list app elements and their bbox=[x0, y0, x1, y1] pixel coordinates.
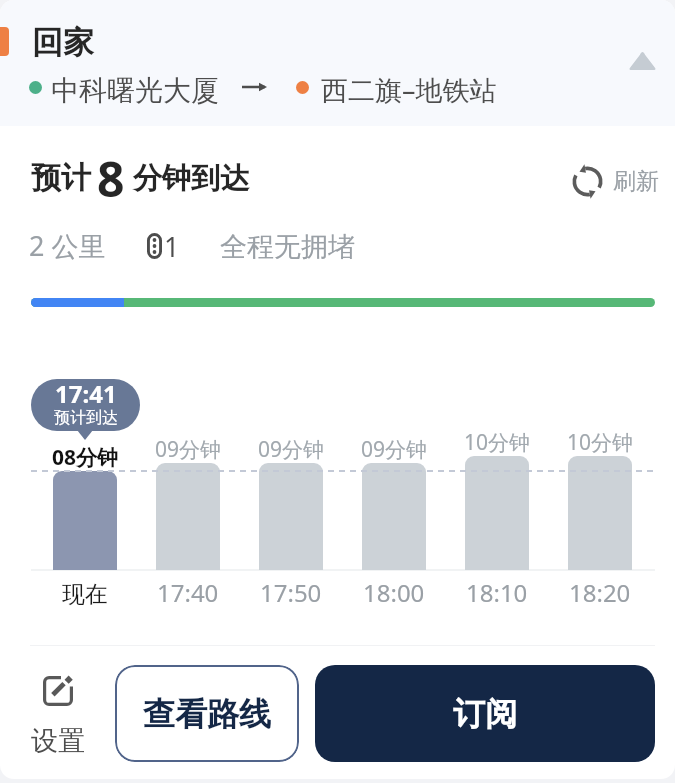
staticText: 设置 bbox=[31, 724, 85, 758]
button[interactable]: Collapse bbox=[614, 32, 671, 89]
staticText: 预计到达 bbox=[54, 408, 118, 428]
button[interactable]: 刷新 bbox=[566, 160, 665, 203]
staticText: 查看路线 bbox=[143, 694, 271, 734]
staticText: 回家 bbox=[32, 23, 94, 62]
button[interactable]: 回家 bbox=[0, 0, 675, 126]
staticText: 现在 bbox=[62, 580, 108, 609]
staticText: 17:41 bbox=[55, 379, 117, 410]
button[interactable]: 订阅 bbox=[315, 665, 655, 762]
staticText: 08分钟 bbox=[52, 443, 119, 472]
staticText: 西二旗–地铁站 bbox=[321, 71, 497, 108]
staticText: 09分钟 bbox=[155, 435, 222, 464]
button[interactable]: 查看路线 bbox=[115, 665, 299, 762]
staticText: 18:00 bbox=[363, 576, 425, 609]
staticText: 中科曙光大厦 bbox=[51, 73, 219, 108]
staticText: 10分钟 bbox=[567, 428, 634, 457]
staticText: 预计 bbox=[31, 159, 91, 197]
staticText: 分钟到达 bbox=[133, 160, 249, 197]
staticText: 17:50 bbox=[260, 576, 322, 609]
staticText: 17:40 bbox=[157, 576, 219, 609]
staticText: 18:20 bbox=[569, 576, 631, 609]
staticText: 18:10 bbox=[466, 576, 528, 609]
staticText: 2 公里 bbox=[29, 227, 106, 264]
button[interactable]: 设置 bbox=[26, 676, 90, 758]
staticText: 10分钟 bbox=[464, 428, 531, 457]
staticText: 全程无拥堵 bbox=[220, 230, 355, 264]
staticText: 09分钟 bbox=[258, 435, 325, 464]
staticText: 09分钟 bbox=[361, 435, 428, 464]
staticText: 1 bbox=[164, 228, 180, 265]
staticText: 订阅 bbox=[453, 694, 517, 734]
staticText: 刷新 bbox=[613, 167, 659, 196]
staticText: 8 bbox=[97, 146, 125, 211]
